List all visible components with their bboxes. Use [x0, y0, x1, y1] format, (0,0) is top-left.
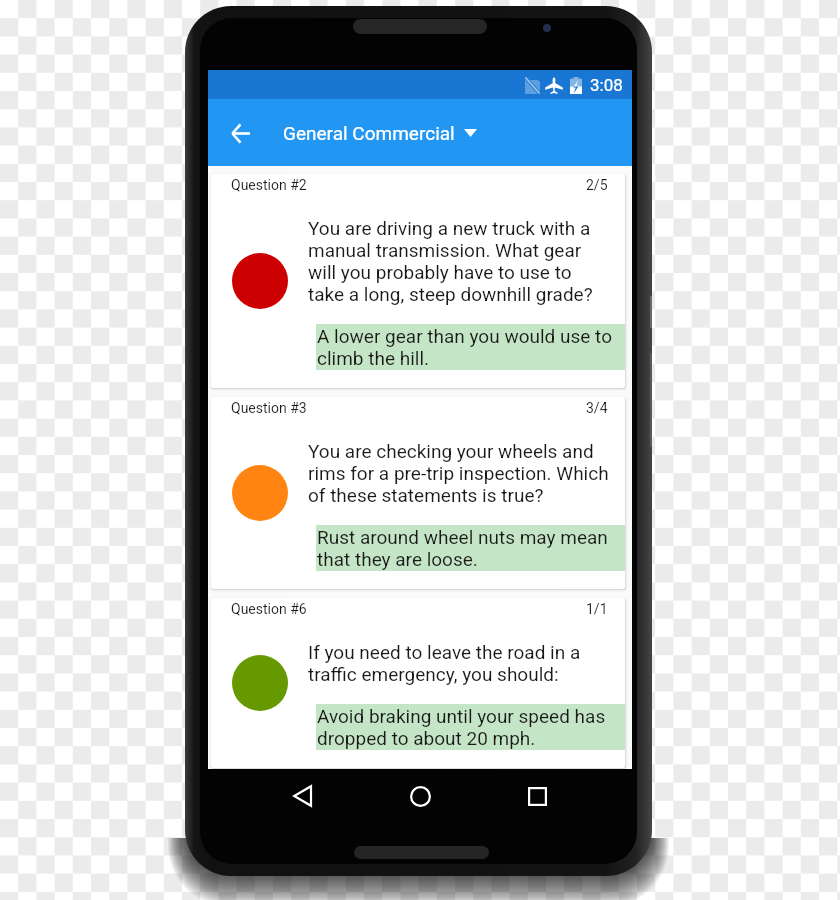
staticText: You are driving a new truck with a manua…: [308, 217, 612, 305]
staticText: 3:08: [590, 75, 623, 95]
button[interactable]: Back: [278, 772, 326, 820]
button[interactable]: General Commercial: [283, 122, 477, 144]
button[interactable]: Question #6: [211, 598, 625, 768]
button[interactable]: Question #3: [211, 397, 625, 589]
staticText: You are checking your wheels and rims fo…: [308, 440, 612, 506]
staticText: Question #6: [231, 601, 307, 617]
staticText: Question #3: [231, 400, 307, 416]
staticText: 2/5: [586, 177, 608, 193]
staticText: Avoid braking until your speed has dropp…: [317, 705, 623, 749]
staticText: A lower gear than you would use to climb…: [317, 325, 623, 369]
staticText: 1/1: [586, 601, 608, 617]
button[interactable]: Recent apps: [513, 772, 561, 820]
staticText: General Commercial: [283, 122, 455, 144]
button[interactable]: Back: [219, 112, 261, 154]
staticText: Rust around wheel nuts may mean that the…: [317, 526, 623, 570]
button[interactable]: Home: [396, 772, 444, 820]
button[interactable]: Question #2: [211, 174, 625, 388]
staticText: 3/4: [586, 400, 608, 416]
staticText: If you need to leave the road in a traff…: [308, 641, 612, 685]
staticText: Question #2: [231, 177, 307, 193]
